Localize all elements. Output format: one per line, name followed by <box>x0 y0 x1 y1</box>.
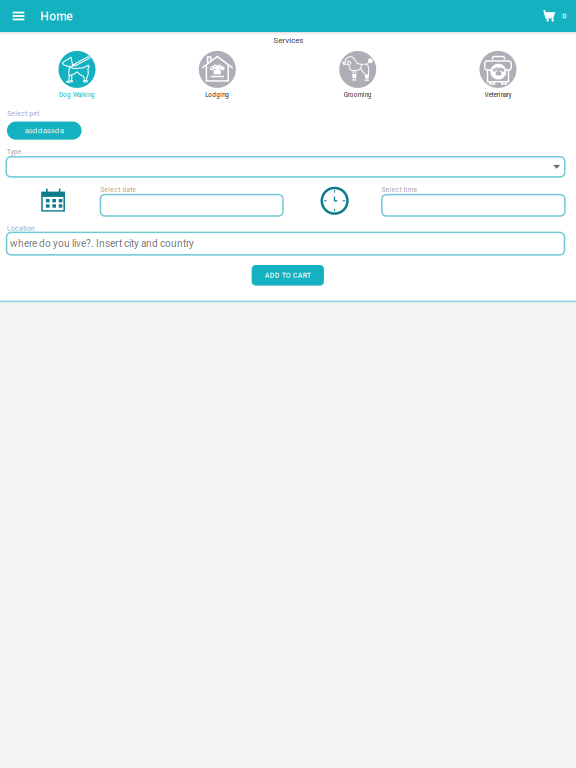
button[interactable]: Cart, 0 items <box>543 6 567 26</box>
staticText: 0 <box>562 11 567 20</box>
staticText: Grooming <box>344 91 372 98</box>
button[interactable]: Veterinary <box>428 51 568 98</box>
staticText: Select time <box>382 186 418 194</box>
staticText: asddassda <box>25 126 64 135</box>
button[interactable]: Pick a date <box>41 189 65 212</box>
button[interactable] <box>100 195 283 216</box>
button[interactable]: ADD TO CART <box>252 265 324 286</box>
button[interactable] <box>6 157 565 177</box>
staticText: Select date <box>100 186 136 194</box>
button[interactable]: Dog Walking <box>7 51 147 98</box>
button[interactable]: Pick a time <box>322 188 347 214</box>
button[interactable]: Lodging <box>147 51 287 98</box>
button[interactable]: Home <box>40 6 72 26</box>
staticText: Lodging <box>205 91 229 98</box>
button[interactable] <box>382 195 565 216</box>
staticText: Services <box>273 36 303 45</box>
staticText: where do you live?. Insert city and coun… <box>10 238 194 249</box>
button[interactable]: asddassda <box>7 121 82 140</box>
staticText: Type <box>7 148 22 156</box>
button[interactable]: Menu <box>6 4 30 28</box>
button[interactable]: Grooming <box>287 51 428 98</box>
staticText: Home <box>40 9 72 23</box>
button[interactable]: where do you live?. Insert city and coun… <box>7 232 564 255</box>
staticText: ADD TO CART <box>265 271 311 279</box>
staticText: Veterinary <box>484 91 511 98</box>
staticText: Select pet <box>7 110 39 118</box>
staticText: Dog Walking <box>59 91 95 98</box>
staticText: Location <box>7 224 35 232</box>
